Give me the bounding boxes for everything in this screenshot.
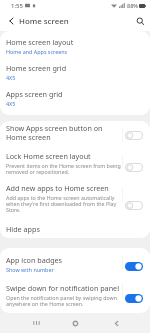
- button[interactable]: Toggle on: [125, 294, 143, 303]
- staticText: Add apps to the Home screen automaticall…: [6, 194, 123, 213]
- button[interactable]: Recent apps: [24, 313, 48, 333]
- staticText: Swipe down for notification panel: [6, 283, 119, 293]
- button[interactable]: Show Apps screen button on Home screen: [0, 121, 150, 148]
- staticText: Home screen: [19, 16, 69, 27]
- button[interactable]: Swipe down for notification panel: [0, 277, 150, 313]
- staticText: App icon badges: [6, 255, 63, 265]
- button[interactable]: Toggle off: [125, 201, 143, 210]
- staticText: Home screen grid: [6, 63, 67, 73]
- button[interactable]: Apps screen grid: [0, 83, 150, 115]
- staticText: Show Apps screen button on Home screen: [6, 123, 123, 142]
- staticText: Apps screen grid: [6, 89, 63, 99]
- button[interactable]: Navigate up: [0, 11, 19, 31]
- staticText: 4X5: [6, 100, 16, 107]
- staticText: Hide apps: [6, 224, 40, 234]
- button[interactable]: Home screen grid: [0, 57, 150, 83]
- staticText: Show with number: [6, 266, 54, 273]
- button[interactable]: Add new apps to Home screen: [0, 180, 150, 219]
- staticText: Prevent items on the Home screen from be…: [6, 162, 123, 175]
- staticText: 1:55: [11, 2, 23, 10]
- staticText: 4X5: [6, 74, 16, 81]
- button[interactable]: Toggle on: [125, 262, 143, 271]
- button[interactable]: Lock Home screen layout: [0, 148, 150, 180]
- button[interactable]: Search: [130, 11, 150, 31]
- staticText: Home and Apps screens: [6, 48, 68, 55]
- button[interactable]: App icon badges: [0, 248, 150, 277]
- staticText: Home screen layout: [6, 37, 74, 47]
- button[interactable]: Hide apps: [0, 219, 150, 238]
- staticText: Open the notification panel by swiping d…: [6, 294, 123, 307]
- button[interactable]: Back: [104, 313, 128, 333]
- staticText: Lock Home screen layout: [6, 151, 91, 161]
- button[interactable]: Toggle off: [125, 163, 143, 172]
- button[interactable]: Home screen layout: [0, 31, 150, 57]
- button[interactable]: Toggle off: [125, 131, 143, 140]
- staticText: 88%: [127, 2, 138, 9]
- staticText: Add new apps to Home screen: [6, 183, 109, 193]
- button[interactable]: Home: [63, 313, 87, 333]
